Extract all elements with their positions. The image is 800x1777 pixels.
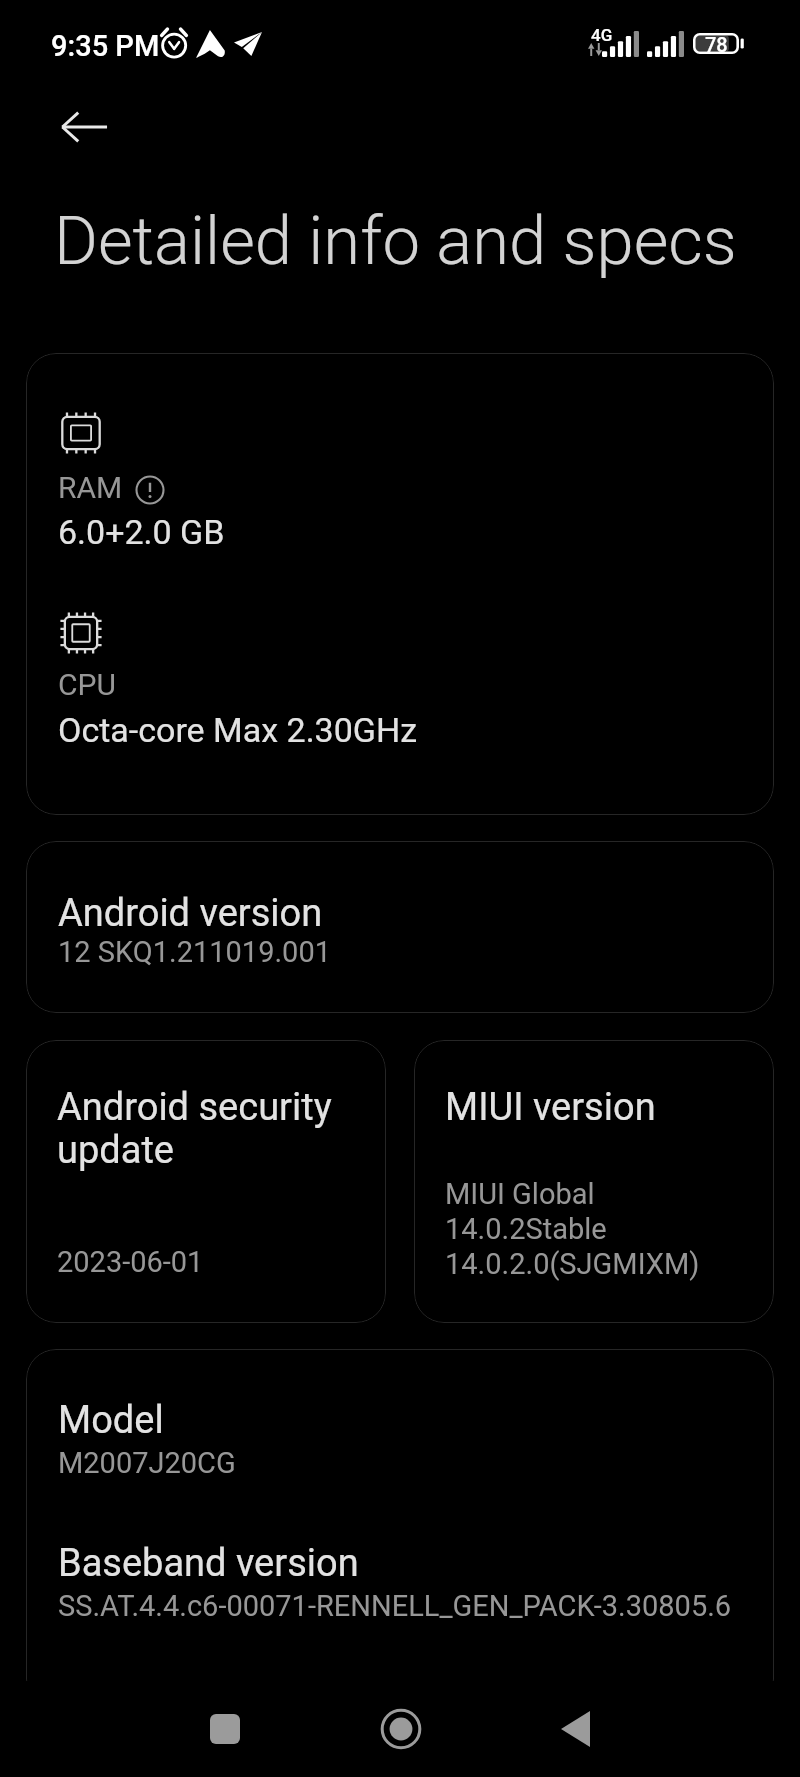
button[interactable]: Home: [354, 1682, 447, 1775]
button[interactable]: Back: [49, 92, 119, 162]
button[interactable]: Android version: [26, 841, 774, 1013]
staticText: 12 SKQ1.211019.001: [58, 935, 331, 969]
staticText: M2007J20CG: [58, 1446, 236, 1480]
staticText: CPU: [58, 667, 116, 702]
button[interactable]: Android security update: [26, 1040, 386, 1323]
staticText: Baseband version: [58, 1541, 359, 1586]
button[interactable]: Recents: [178, 1682, 271, 1775]
button[interactable]: MIUI version: [414, 1040, 774, 1323]
staticText: MIUI Global 14.0.2Stable 14.0.2.0(SJGMIX…: [445, 1177, 700, 1281]
staticText: Octa-core Max 2.30GHz: [58, 710, 418, 750]
staticText: 4G: [591, 25, 613, 45]
button[interactable]: Model: [26, 1349, 774, 1709]
staticText: 78: [705, 33, 728, 54]
button[interactable]: RAM: [26, 353, 774, 815]
staticText: MIUI version: [445, 1085, 656, 1130]
staticText: Detailed info and specs: [54, 202, 737, 281]
staticText: 6.0+2.0 GB: [58, 512, 225, 552]
staticText: Android security update: [57, 1085, 332, 1172]
staticText: Android version: [58, 891, 323, 936]
staticText: 9:35 PM: [51, 29, 160, 63]
button[interactable]: Back: [529, 1682, 622, 1775]
staticText: 2023-06-01: [57, 1245, 204, 1279]
staticText: Model: [58, 1398, 164, 1443]
staticText: SS.AT.4.4.c6-00071-RENNELL_GEN_PACK-3.30…: [58, 1589, 732, 1623]
staticText: RAM: [58, 470, 123, 505]
